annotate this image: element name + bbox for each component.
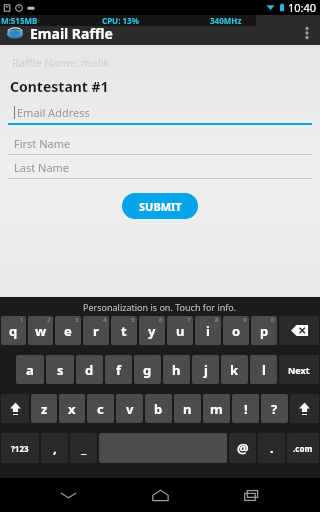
staticText: SUBMIT (139, 199, 182, 214)
staticText: g (143, 361, 152, 379)
staticText: y (148, 322, 156, 340)
button[interactable]: Home (136, 478, 184, 512)
button[interactable]: h (163, 355, 190, 384)
button[interactable]: t (111, 316, 137, 345)
staticText: h (172, 361, 181, 379)
button[interactable]: y (139, 316, 165, 345)
staticText: k (230, 361, 239, 379)
staticText: Last Name (14, 160, 70, 175)
staticText: 2 (47, 316, 51, 324)
button[interactable]: Shift (290, 394, 319, 423)
staticText: e (64, 322, 72, 340)
staticText: 7 (187, 316, 191, 324)
button[interactable]: z (31, 394, 57, 423)
staticText: Personalization is on. Touch for info. (83, 301, 237, 313)
staticText: a (26, 361, 34, 379)
staticText: 1 (20, 316, 24, 324)
button[interactable]: w (28, 316, 53, 345)
staticText: b (154, 400, 163, 418)
staticText: _ (81, 439, 87, 457)
staticText: x (68, 400, 76, 418)
button[interactable]: More options (294, 15, 320, 45)
button[interactable]: Last Name (8, 159, 312, 179)
button[interactable]: m (203, 394, 230, 423)
staticText: z (41, 400, 48, 418)
button[interactable]: Back (44, 478, 92, 512)
button[interactable]: @ (229, 433, 256, 463)
staticText: p (260, 322, 269, 340)
staticText: ?123 (11, 443, 29, 454)
staticText: 9 (243, 316, 247, 324)
button[interactable]: j (192, 355, 219, 384)
staticText: ! (244, 400, 248, 418)
button[interactable]: g (134, 355, 161, 384)
staticText: n (183, 400, 192, 418)
button[interactable]: s (46, 355, 74, 384)
button[interactable]: r (83, 316, 109, 345)
staticText: v (126, 400, 134, 418)
staticText: f (116, 361, 122, 379)
button[interactable]: i (195, 316, 221, 345)
staticText: m (210, 400, 223, 418)
staticText: M:515MB (1, 15, 38, 26)
button[interactable]: Personalization is on. Touch for info. (0, 297, 320, 316)
button[interactable]: c (87, 394, 114, 423)
staticText: CPU: 13% (102, 15, 139, 26)
staticText: Email Raffle (30, 24, 113, 43)
button[interactable]: b (145, 394, 172, 423)
button[interactable]: Recent apps (228, 478, 276, 512)
staticText: @ (237, 439, 249, 457)
staticText: u (176, 322, 185, 340)
staticText: c (97, 400, 104, 418)
staticText: Email Address (17, 105, 90, 120)
button[interactable]: _ (70, 433, 97, 463)
button[interactable]: Next (279, 355, 319, 384)
button[interactable]: f (105, 355, 132, 384)
button[interactable]: v (116, 394, 143, 423)
staticText: r (93, 322, 99, 340)
staticText: o (232, 322, 241, 340)
button[interactable]: u (167, 316, 193, 345)
button[interactable]: Shift (1, 394, 29, 423)
staticText: Next (288, 364, 310, 376)
button[interactable]: l (250, 355, 277, 384)
button[interactable]: a (16, 355, 44, 384)
button[interactable]: o (223, 316, 249, 345)
staticText: q (9, 322, 18, 340)
staticText: t (121, 322, 127, 340)
button[interactable]: d (76, 355, 103, 384)
staticText: First Name (14, 136, 71, 151)
staticText: 3 (75, 316, 79, 324)
button[interactable]: First Name (8, 135, 312, 155)
staticText: , (53, 439, 57, 457)
staticText: 8 (215, 316, 219, 324)
staticText: 4 (103, 316, 107, 324)
staticText: .com (293, 443, 313, 454)
button[interactable]: . (258, 433, 285, 463)
button[interactable]: Email Address (8, 104, 312, 125)
staticText: . (270, 439, 274, 457)
button[interactable]: .com (287, 433, 319, 463)
staticText: i (206, 322, 210, 340)
button[interactable]: k (221, 355, 248, 384)
button[interactable]: ? (261, 394, 288, 423)
button[interactable]: q (1, 316, 26, 345)
staticText: 10:40 (288, 0, 317, 15)
button[interactable]: ! (232, 394, 259, 423)
button[interactable]: e (55, 316, 81, 345)
button[interactable]: , (41, 433, 68, 463)
button[interactable]: x (59, 394, 85, 423)
staticText: Raffle Name: malik (12, 55, 110, 70)
staticText: 0 (271, 316, 275, 324)
button[interactable]: SUBMIT (122, 193, 198, 219)
staticText: 6 (159, 316, 163, 324)
staticText: d (85, 361, 94, 379)
button[interactable]: ?123 (1, 433, 39, 463)
button[interactable]: n (174, 394, 201, 423)
button[interactable]: p (251, 316, 277, 345)
staticText: j (204, 361, 208, 379)
button[interactable]: Backspace (279, 316, 319, 345)
staticText: 5 (131, 316, 135, 324)
staticText: Contestant #1 (10, 77, 109, 96)
